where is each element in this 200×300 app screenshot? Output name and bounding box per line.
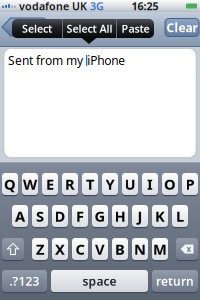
button[interactable]: X <box>52 237 68 261</box>
button[interactable]: K <box>152 204 168 228</box>
button[interactable]: G <box>92 204 108 228</box>
button[interactable]: J <box>132 204 148 228</box>
staticText: U <box>124 174 135 194</box>
staticText: N <box>134 239 146 259</box>
button[interactable]: H <box>112 204 128 228</box>
button[interactable]: L <box>172 204 188 228</box>
staticText: Clear <box>166 19 197 35</box>
button[interactable]: E <box>42 172 58 196</box>
button[interactable]: Delete <box>176 237 198 261</box>
button[interactable]: return <box>152 269 198 293</box>
button[interactable]: Z <box>32 237 48 261</box>
staticText: H <box>114 206 125 226</box>
button[interactable]: Select All <box>63 19 116 38</box>
staticText: I <box>147 174 153 194</box>
staticText: W <box>23 174 37 194</box>
staticText: C <box>75 239 84 259</box>
staticText: J <box>137 206 142 226</box>
button[interactable]: Q <box>2 172 18 196</box>
staticText: S <box>36 206 44 226</box>
button[interactable]: Back <box>2 18 46 36</box>
staticText: Z <box>36 239 44 259</box>
button[interactable]: V <box>92 237 108 261</box>
staticText: X <box>55 239 65 259</box>
button[interactable]: C <box>72 237 88 261</box>
staticText: B <box>115 239 125 259</box>
button[interactable]: Shift <box>2 237 24 261</box>
button[interactable]: S <box>32 204 48 228</box>
staticText: T <box>86 174 94 194</box>
staticText: F <box>76 206 84 226</box>
button[interactable]: N <box>132 237 148 261</box>
button[interactable]: A <box>12 204 28 228</box>
staticText: Q <box>4 174 16 194</box>
button[interactable]: Select <box>12 19 62 38</box>
staticText: .?123 <box>9 273 39 289</box>
staticText: space <box>82 273 116 289</box>
button[interactable]: space <box>51 269 148 293</box>
staticText: D <box>54 206 65 226</box>
button[interactable]: M <box>152 237 168 261</box>
staticText: return <box>156 273 194 289</box>
button[interactable]: B <box>112 237 128 261</box>
button[interactable]: Clear <box>165 18 199 36</box>
button[interactable]: F <box>72 204 88 228</box>
staticText: V <box>95 239 105 259</box>
button[interactable]: I <box>142 172 158 196</box>
staticText: G <box>94 206 105 226</box>
staticText: P <box>185 174 194 194</box>
button[interactable]: Paste <box>117 19 154 38</box>
staticText: Paste <box>121 21 149 36</box>
staticText: 16:25 <box>131 0 158 13</box>
staticText: Y <box>105 174 114 194</box>
staticText: A <box>15 206 25 226</box>
button[interactable]: D <box>52 204 68 228</box>
staticText: 3G <box>87 0 104 13</box>
button[interactable]: P <box>182 172 198 196</box>
button[interactable]: Y <box>102 172 118 196</box>
button[interactable]: R <box>62 172 78 196</box>
staticText: iPhone <box>87 52 125 68</box>
button[interactable]: W <box>22 172 38 196</box>
staticText: Select <box>22 21 52 36</box>
staticText: vodafone UK <box>16 0 87 13</box>
staticText: Mail <box>15 19 41 35</box>
staticText: Sent from my <box>8 52 86 68</box>
staticText: L <box>176 206 184 226</box>
button[interactable]: O <box>162 172 178 196</box>
staticText: Select All <box>66 21 112 36</box>
button[interactable]: T <box>82 172 98 196</box>
staticText: M <box>153 239 167 259</box>
staticText: K <box>155 206 165 226</box>
staticText: x <box>186 244 191 254</box>
button[interactable]: .?123 <box>2 269 47 293</box>
button[interactable]: U <box>122 172 138 196</box>
staticText: E <box>46 174 54 194</box>
staticText: R <box>65 174 75 194</box>
staticText: O <box>164 174 176 194</box>
